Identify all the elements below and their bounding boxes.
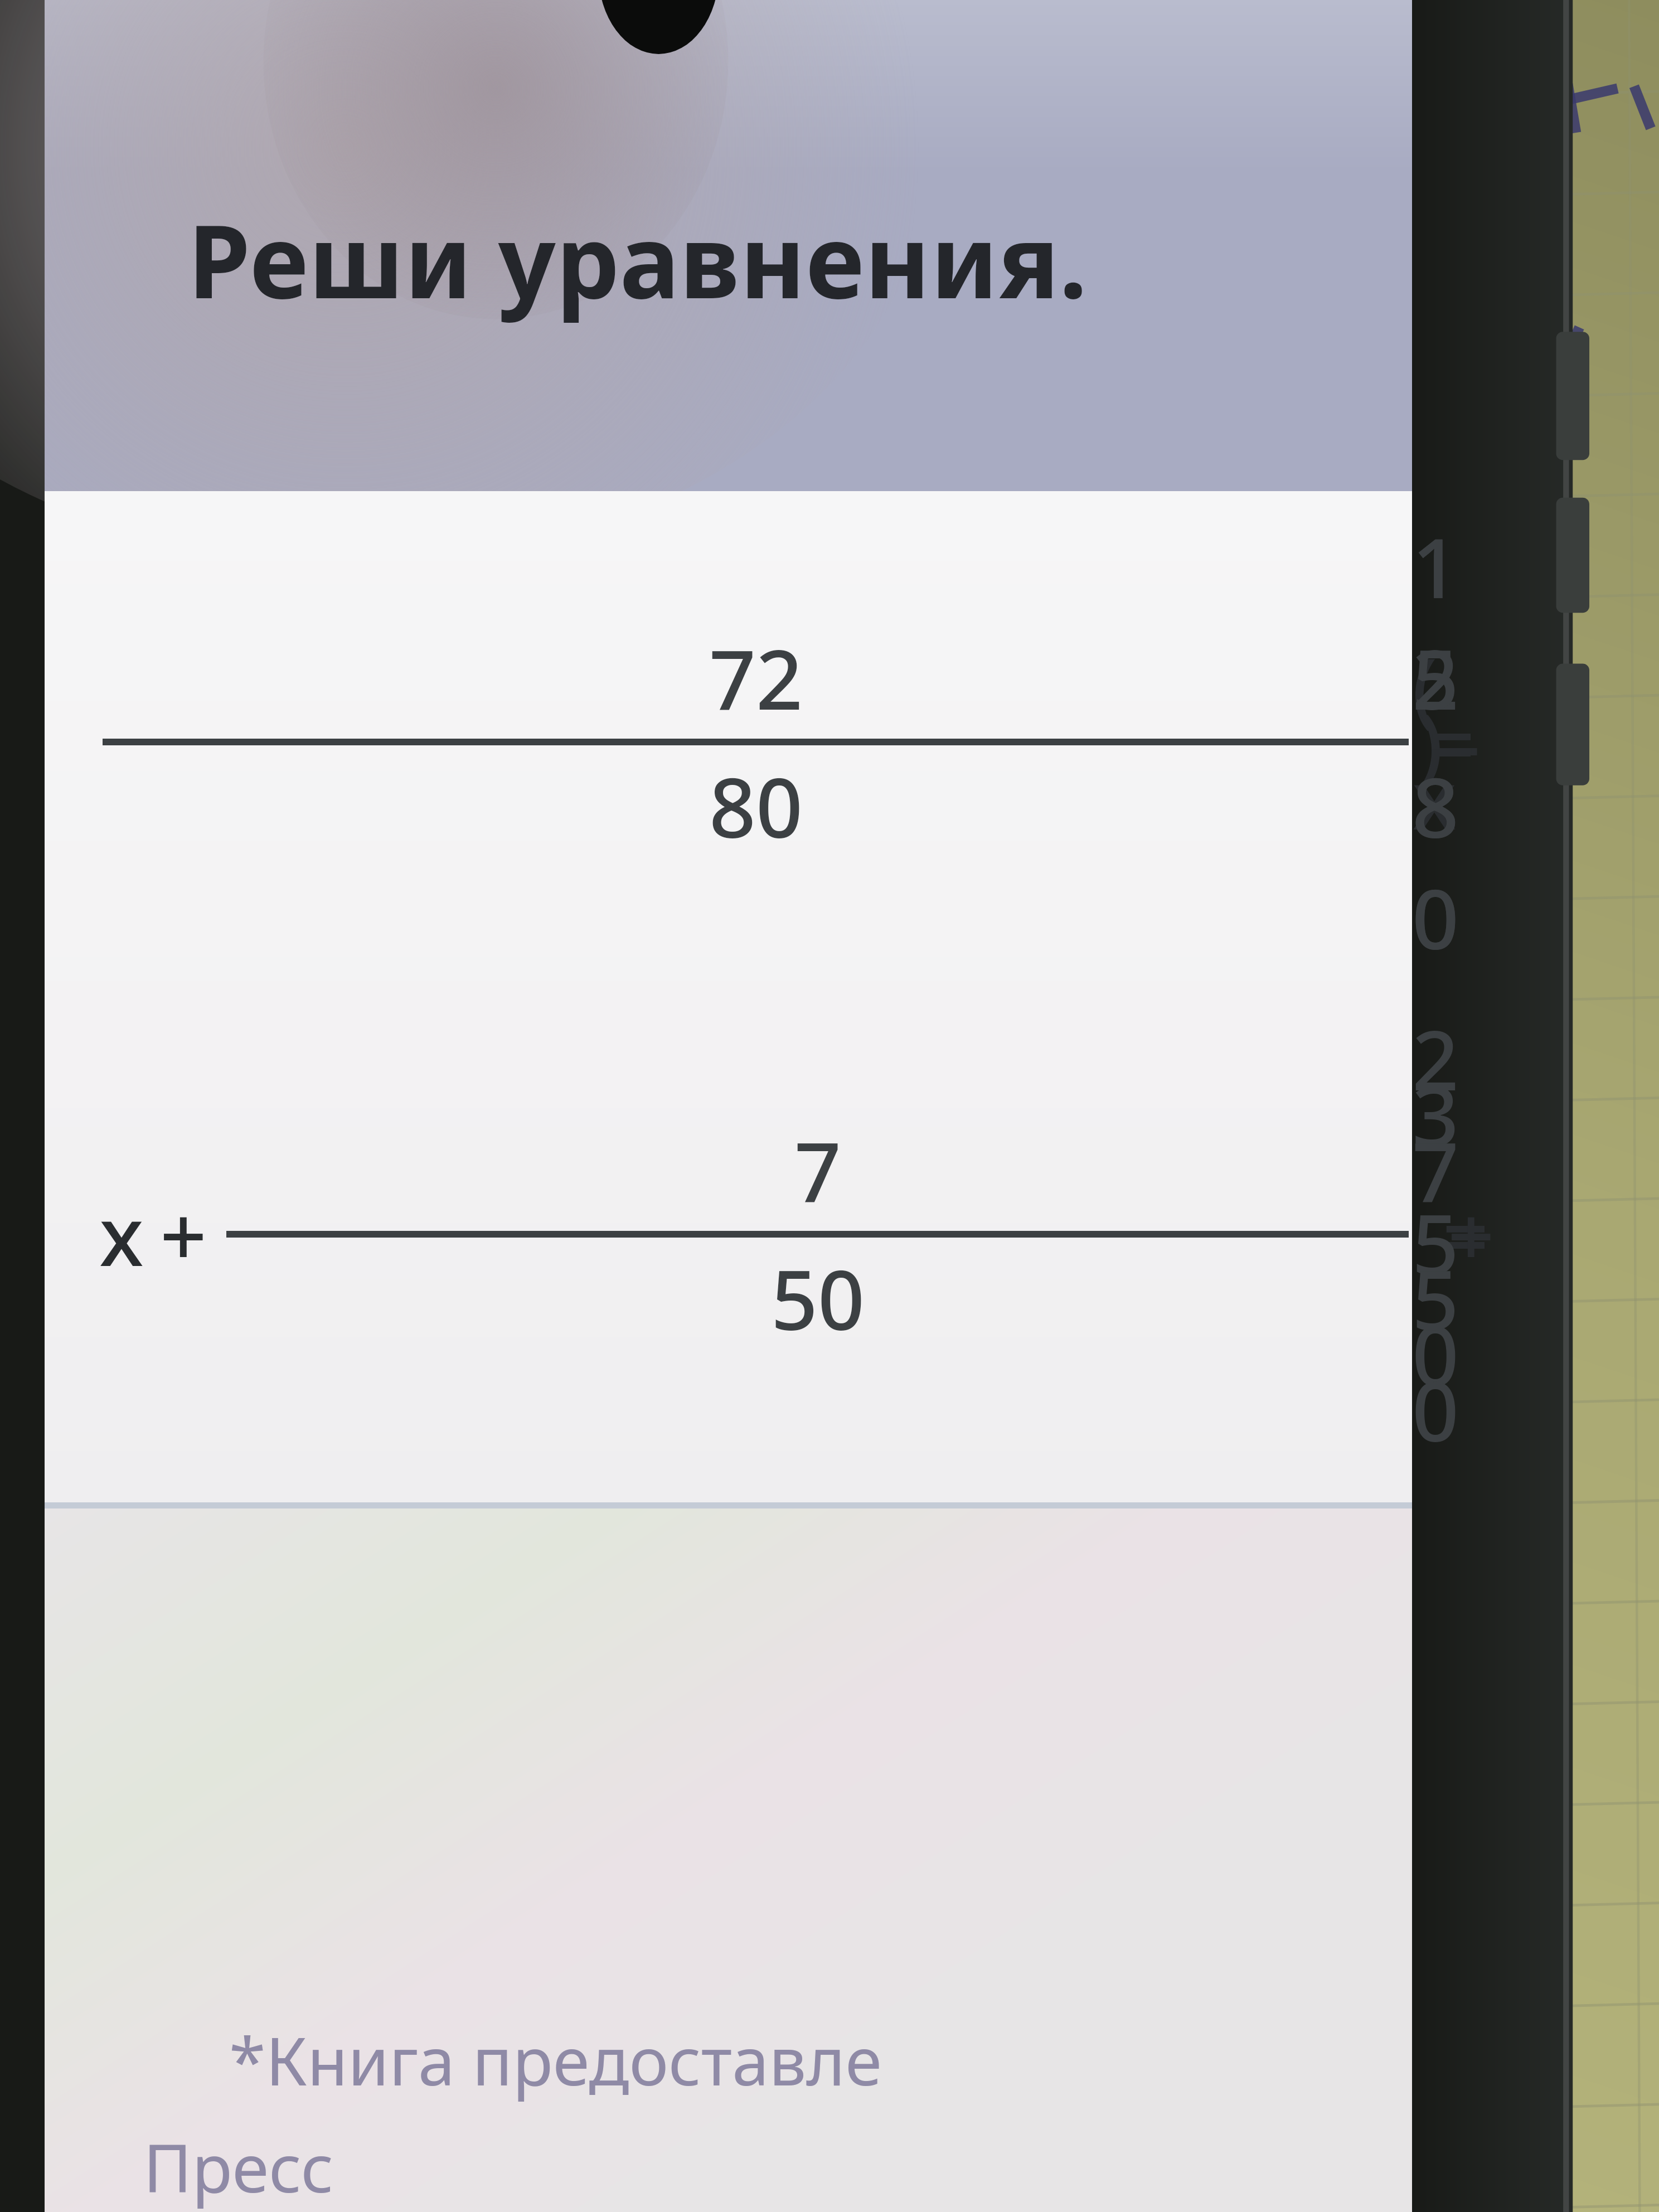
staticText: Реши уравнения. bbox=[188, 191, 1088, 328]
staticText: 50 bbox=[771, 1243, 865, 1354]
staticText: + bbox=[160, 1178, 207, 1290]
staticText: 72 bbox=[709, 622, 803, 734]
staticText: 7 bbox=[794, 1114, 841, 1226]
staticText: Пресс bbox=[143, 2122, 334, 2212]
staticText: 80 bbox=[709, 750, 803, 862]
staticText: *Книга предоставле bbox=[229, 2015, 882, 2105]
button[interactable]: 72 bbox=[99, 511, 1412, 973]
staticText: x bbox=[99, 1178, 144, 1290]
button[interactable]: x bbox=[99, 1003, 1412, 1466]
